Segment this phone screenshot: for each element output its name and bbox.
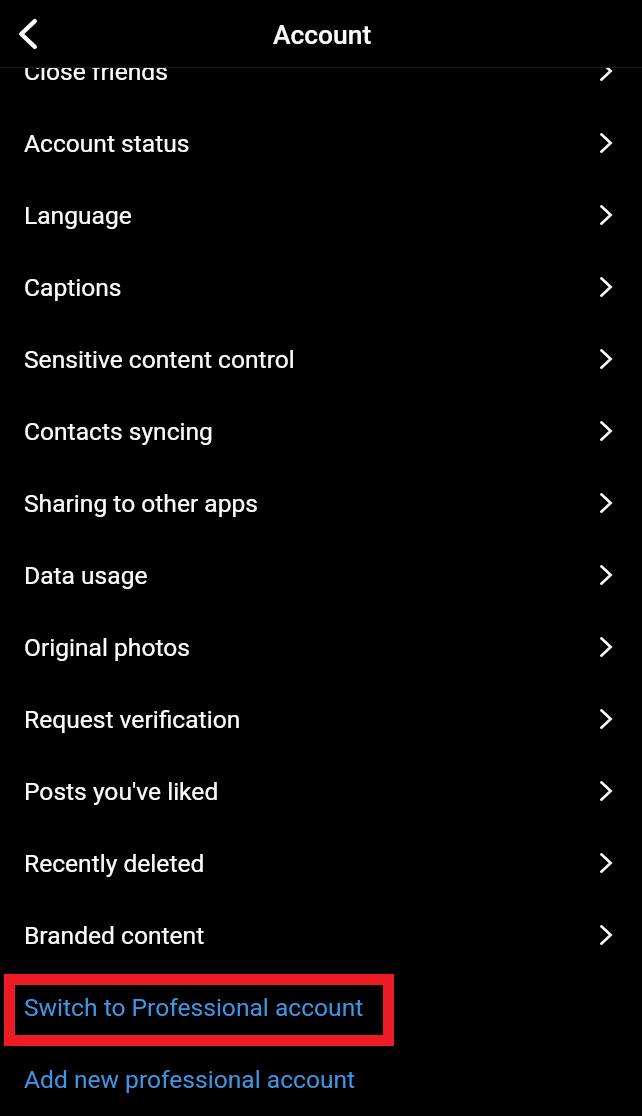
staticText: Contacts syncing (24, 417, 213, 446)
button[interactable]: Add new professional account (0, 1043, 642, 1115)
staticText: Language (24, 201, 132, 230)
staticText: Account (273, 20, 372, 51)
staticText: Captions (24, 273, 122, 302)
button[interactable]: Recently deleted (0, 827, 642, 899)
staticText: Request verification (24, 705, 241, 734)
button[interactable]: Contacts syncing (0, 395, 642, 467)
button[interactable]: Posts you've liked (0, 755, 642, 827)
button[interactable]: Original photos (0, 611, 642, 683)
button[interactable]: Language (0, 179, 642, 251)
staticText: Add new professional account (24, 1065, 356, 1094)
staticText: Switch to Professional account (24, 993, 364, 1022)
button[interactable]: Sharing to other apps (0, 467, 642, 539)
button[interactable]: Back (0, 0, 56, 68)
staticText: Original photos (24, 633, 190, 662)
staticText: Sharing to other apps (24, 489, 259, 518)
button[interactable]: Switch to Professional account (0, 971, 642, 1043)
button[interactable]: Captions (0, 251, 642, 323)
staticText: Account status (24, 129, 190, 158)
button[interactable]: Request verification (0, 683, 642, 755)
button[interactable]: Branded content (0, 899, 642, 971)
staticText: Recently deleted (24, 849, 205, 878)
staticText: Sensitive content control (24, 345, 295, 374)
staticText: Data usage (24, 561, 148, 590)
button[interactable]: Sensitive content control (0, 323, 642, 395)
button[interactable]: Close friends (0, 35, 642, 107)
staticText: Close friends (24, 57, 168, 86)
staticText: Branded content (24, 921, 205, 950)
staticText: Posts you've liked (24, 777, 219, 806)
button[interactable]: Account status (0, 107, 642, 179)
button[interactable]: Data usage (0, 539, 642, 611)
